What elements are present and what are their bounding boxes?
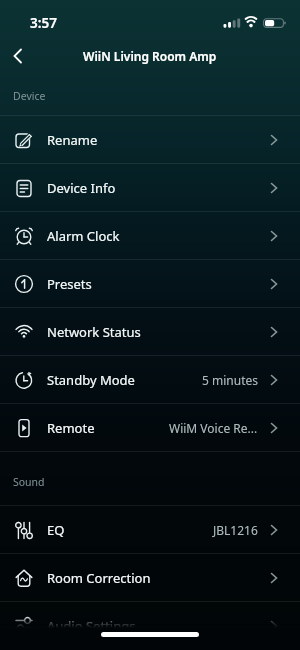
staticText: Device Info xyxy=(47,179,116,197)
staticText: WiiM Voice Re... xyxy=(169,420,258,436)
button[interactable] xyxy=(6,44,30,68)
button[interactable]: Device Info xyxy=(0,164,300,211)
button[interactable]: Standby Mode xyxy=(0,356,300,403)
button[interactable]: EQ xyxy=(0,506,300,553)
button[interactable]: Presets xyxy=(0,260,300,307)
button[interactable]: Rename xyxy=(0,116,300,163)
staticText: 5 minutes xyxy=(202,372,258,388)
staticText: Device xyxy=(13,89,46,103)
button[interactable]: Alarm Clock xyxy=(0,212,300,259)
staticText: EQ xyxy=(47,521,65,539)
staticText: Audio Settings xyxy=(47,617,136,635)
staticText: JBL1216 xyxy=(213,522,258,538)
button[interactable]: Room Correction xyxy=(0,554,300,601)
button[interactable]: Remote xyxy=(0,404,300,451)
staticText: 3:57 xyxy=(30,14,57,32)
staticText: Sound xyxy=(13,475,45,489)
staticText: Alarm Clock xyxy=(47,227,120,245)
button[interactable]: Network Status xyxy=(0,308,300,355)
staticText: Rename xyxy=(47,131,98,149)
staticText: Presets xyxy=(47,275,92,293)
button[interactable]: Audio Settings xyxy=(0,602,300,649)
staticText: WiiN Living Room Amp xyxy=(83,48,217,64)
staticText: Network Status xyxy=(47,323,141,341)
staticText: Standby Mode xyxy=(47,371,135,389)
staticText: Remote xyxy=(47,419,95,437)
staticText: Room Correction xyxy=(47,569,151,587)
